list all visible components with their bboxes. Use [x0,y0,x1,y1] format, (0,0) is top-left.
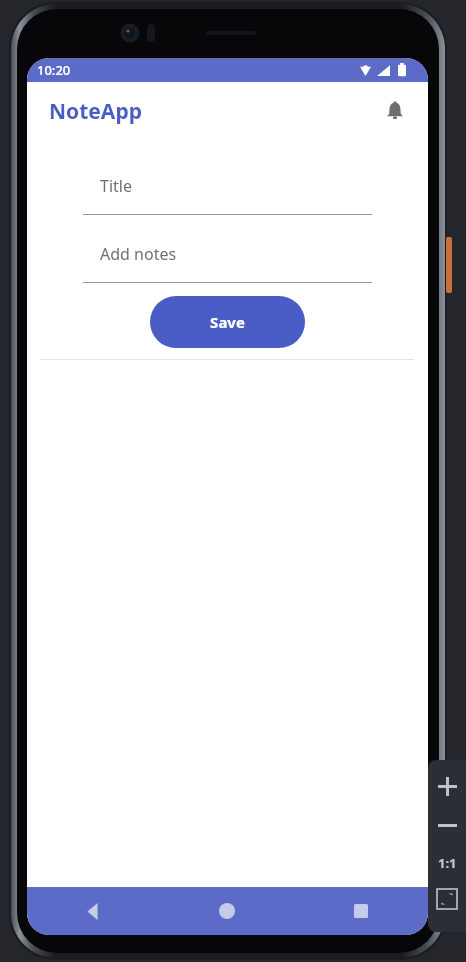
button[interactable]: Zoom out [431,809,463,841]
button[interactable]: Add notes [83,239,372,283]
staticText: 1:1 [438,854,457,872]
button[interactable]: Back [27,887,160,935]
button[interactable]: NoteApp [49,97,142,126]
button[interactable]: Title [83,171,372,215]
button[interactable]: 1:1 [432,848,462,878]
staticText: Save [210,312,245,332]
button[interactable]: Recent apps [294,887,428,935]
button[interactable]: Notifications [376,92,414,130]
staticText: Add notes [100,243,177,265]
button[interactable]: Home [160,887,294,935]
button[interactable]: Save [150,296,305,348]
button[interactable]: Zoom in [431,770,463,802]
button[interactable]: Fullscreen [431,883,463,915]
staticText: Title [100,175,132,197]
staticText: 10:20 [37,61,71,79]
